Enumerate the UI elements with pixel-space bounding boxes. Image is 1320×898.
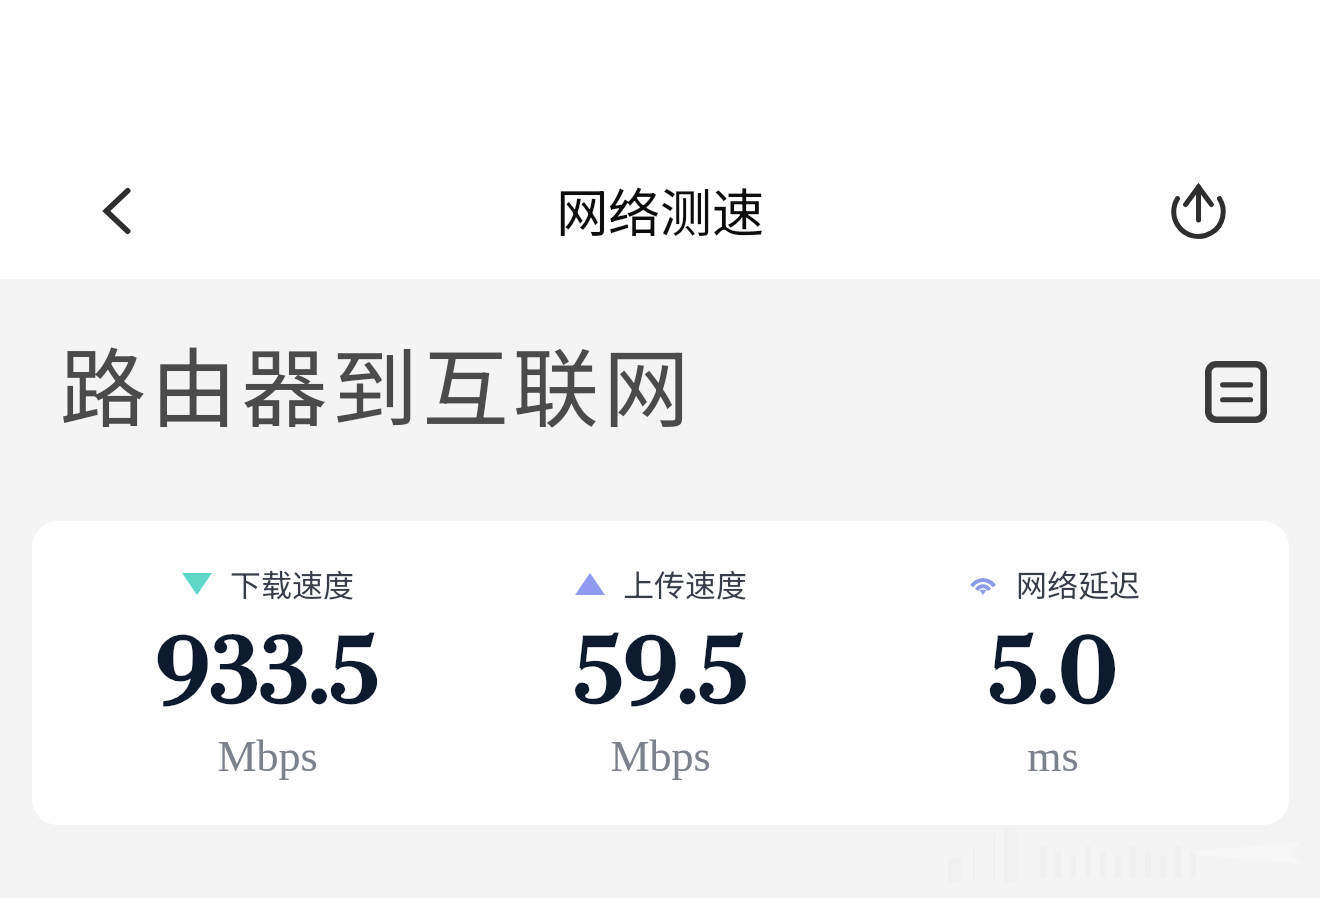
button[interactable]: Share [1149, 161, 1249, 261]
button[interactable]: History [1191, 347, 1281, 437]
staticText: Mbps [217, 732, 318, 781]
staticText: 路由器到互联网 [60, 320, 695, 445]
staticText: ms [1027, 732, 1079, 781]
staticText: Mbps [610, 732, 711, 781]
staticText: 上传速度 [623, 561, 747, 606]
button[interactable]: Back [67, 161, 167, 261]
staticText: 下载速度 [230, 561, 354, 606]
staticText: 网络延迟 [1016, 561, 1140, 606]
staticText: 5.0 [988, 619, 1118, 732]
staticText: 933.5 [155, 619, 379, 732]
staticText: 网络测速 [556, 172, 765, 247]
staticText: 59.5 [573, 619, 748, 732]
